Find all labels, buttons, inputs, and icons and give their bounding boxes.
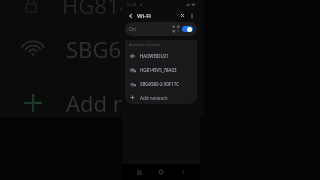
staticText: HG8145V [62,0,158,20]
button[interactable]: Back [126,11,135,20]
staticText: SBG6580-2-50F17C [140,81,179,87]
button[interactable]: Wi-Fi on [182,26,193,32]
button[interactable]: HAOWEIDU21 [125,49,197,63]
staticText: Available networks [129,42,161,47]
button[interactable]: Back [178,167,188,177]
staticText: HAOWEIDU21 [140,53,169,59]
staticText: SBG6580 [66,34,159,64]
button[interactable]: More options [187,11,196,20]
staticText: 10:24 [126,2,137,7]
button[interactable]: Close [178,11,187,20]
button[interactable]: SBG6580-2-50F17C [125,77,197,91]
staticText: Wi-Fi [137,12,151,20]
button[interactable]: Add network [125,91,197,104]
staticText: HG8145V5_78A03 [140,67,177,73]
button[interactable]: Home [156,167,166,177]
staticText: Add netw [66,88,165,118]
button[interactable]: Recents [134,167,144,177]
staticText: On [129,26,136,33]
button[interactable]: HG8145V5_78A03 [125,63,197,77]
button[interactable]: On [125,22,197,36]
staticText: Add network [140,95,168,101]
